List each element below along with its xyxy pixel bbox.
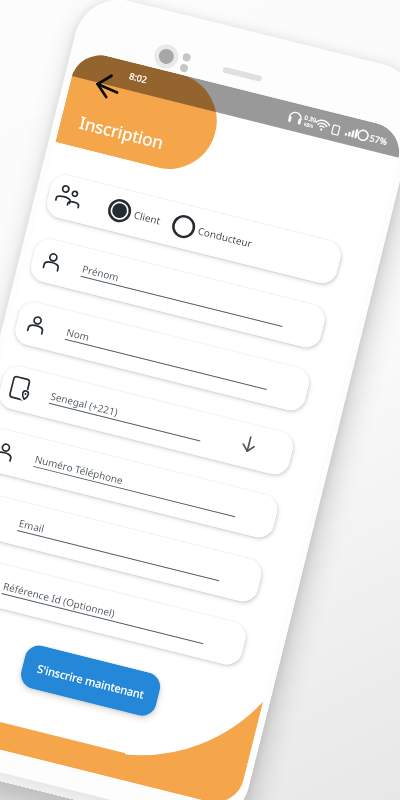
staticText: S'inscrire maintenant	[36, 661, 146, 702]
staticText: Nom	[65, 325, 91, 344]
staticText: Prénom	[81, 262, 121, 284]
button[interactable]: Senegal (+221)	[0, 363, 297, 478]
button[interactable]: Numéro Téléphone	[0, 426, 281, 541]
button[interactable]: Client	[43, 172, 344, 287]
staticText: 0.39	[304, 114, 317, 124]
staticText: Numéro Téléphone	[33, 452, 125, 487]
button[interactable]: Référence Id (Optionnel)	[0, 553, 249, 668]
staticText: Inscription	[77, 111, 166, 154]
button[interactable]: Email	[0, 490, 265, 605]
button[interactable]: Back	[89, 68, 127, 107]
staticText: Senegal (+221)	[49, 389, 119, 419]
button[interactable]: S'inscrire maintenant	[18, 642, 163, 719]
staticText: Email	[17, 516, 46, 536]
staticText: Client	[132, 207, 162, 228]
staticText: KB/s	[303, 121, 315, 129]
button[interactable]: Client	[104, 194, 167, 235]
button[interactable]: Nom	[12, 299, 313, 414]
staticText: Conducteur	[196, 223, 254, 251]
staticText: 8:02	[128, 69, 149, 85]
staticText: 57%	[368, 131, 389, 147]
button[interactable]: Prénom	[27, 236, 328, 351]
button[interactable]: Conducteur	[168, 210, 257, 258]
staticText: Référence Id (Optionnel)	[2, 579, 117, 620]
